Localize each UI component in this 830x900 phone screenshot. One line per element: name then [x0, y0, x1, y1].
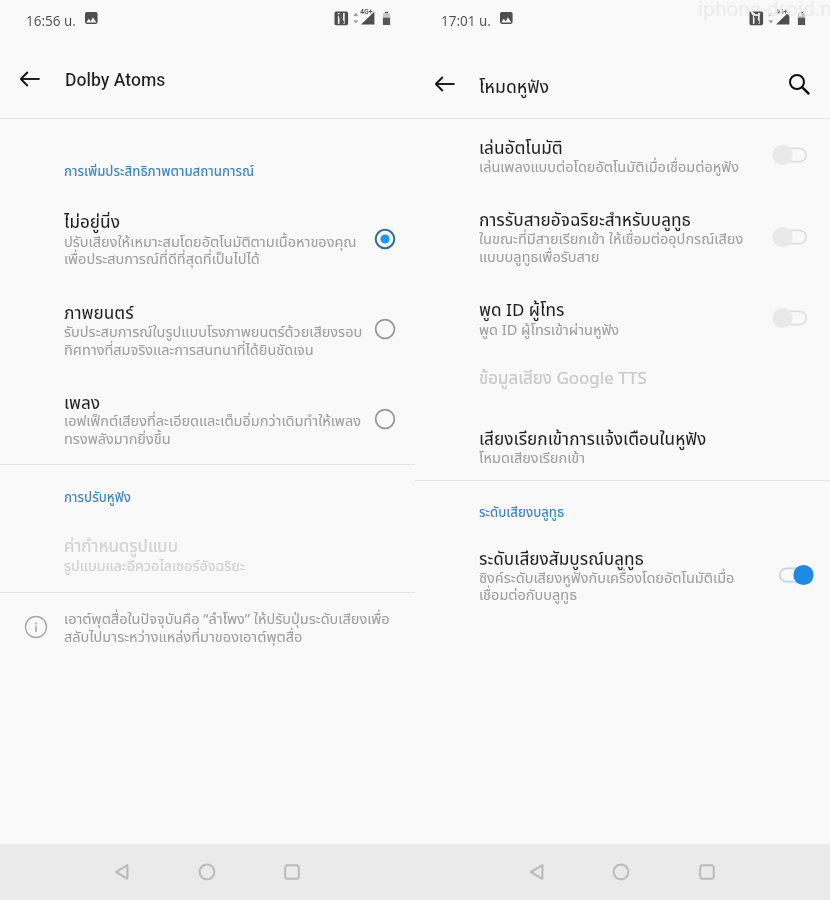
staticText: iphone-droid.net — [698, 0, 830, 22]
staticText: เล่นอัตโนมัติ — [479, 136, 563, 162]
button[interactable]: ระดับเสียงสัมบูรณ์บลูทูธ — [415, 536, 830, 620]
staticText: ระดับเสียงสัมบูรณ์บลูทูธ — [479, 547, 644, 573]
staticText: ค่ากำหนดรูปแบบ — [64, 534, 178, 560]
staticText: 4G+ — [775, 8, 788, 16]
button[interactable]: Toggle setting — [767, 215, 819, 259]
staticText: เล่นเพลงแบบต่อโดยอัตโนมัติเมื่อเชื่อมต่อ… — [479, 157, 739, 179]
button[interactable]: ภาพยนตร์ — [0, 286, 415, 376]
button[interactable]: Back — [514, 848, 562, 896]
button[interactable]: Select option — [363, 217, 407, 261]
staticText: ซิงค์ระดับเสียงหูฟังกับเครื่องโดยอัตโนมั… — [479, 568, 735, 590]
staticText: ข้อมูลเสียง Google TTS — [479, 366, 647, 392]
staticText: ระดับเสียงบลูทูธ — [479, 503, 565, 523]
button[interactable]: Navigate up — [8, 57, 52, 101]
staticText: พูด ID ผู้โทรเข้าผ่านหูฟัง — [479, 320, 620, 342]
button[interactable]: Recent apps — [268, 848, 316, 896]
staticText: แบบบลูทูธเพื่อรับสาย — [479, 247, 600, 269]
button[interactable]: Toggle setting — [767, 553, 819, 597]
button[interactable]: ข้อมูลเสียง Google TTS — [415, 360, 830, 406]
staticText: การปรับหูฟัง — [64, 488, 131, 508]
button[interactable]: Home — [183, 848, 231, 896]
button[interactable]: ไม่อยู่นิ่ง — [0, 195, 415, 285]
staticText: พูด ID ผู้โทร — [479, 298, 565, 324]
staticText: ทรงพลังมากยิ่งขึ้น — [64, 429, 171, 451]
staticText: ไม่อยู่นิ่ง — [64, 210, 120, 236]
staticText: Dolby Atoms — [65, 70, 166, 91]
button[interactable]: Toggle setting — [767, 133, 819, 177]
staticText: 17:01 น. — [441, 12, 491, 32]
button[interactable]: Select option — [363, 307, 407, 351]
button[interactable]: เสียงเรียกเข้าการแจ้งเตือนในหูฟัง — [415, 414, 830, 480]
staticText: ปรับเสียงให้เหมาะสมโดยอัตโนมัติตามเนื้อห… — [64, 232, 357, 254]
staticText: เพื่อประสบการณ์ที่ดีที่สุดที่เป็นไปได้ — [64, 249, 260, 271]
staticText: โหมดเสียงเรียกเข้า — [479, 448, 586, 470]
staticText: รับประสบการณ์ในรูปแบบโรงภาพยนตร์ด้วยเสีย… — [64, 322, 363, 344]
staticText: รูปแบบและอีควอไลเซอร์อัจฉริยะ — [64, 556, 245, 578]
button[interactable]: Search — [776, 62, 820, 106]
staticText: เชื่อมต่อกับบลูทูธ — [479, 585, 578, 607]
staticText: 4G+ — [360, 8, 373, 16]
button[interactable]: เพลง — [0, 376, 415, 464]
staticText: 16:56 น. — [26, 12, 76, 32]
button[interactable]: Back — [99, 848, 147, 896]
staticText: การเพิ่มประสิทธิภาพตามสถานการณ์ — [64, 162, 255, 182]
staticText: ภาพยนตร์ — [64, 301, 134, 327]
staticText: การรับสายอัจฉริยะสำหรับบลูทูธ — [479, 208, 691, 234]
button[interactable]: ค่ากำหนดรูปแบบ — [0, 520, 415, 592]
button[interactable]: Select option — [363, 397, 407, 441]
button[interactable]: Navigate up — [423, 62, 467, 106]
staticText: โหมดหูฟัง — [479, 74, 549, 100]
staticText: ในขณะที่มีสายเรียกเข้า ให้เชื่อมต่ออุปกร… — [479, 229, 744, 251]
staticText: เพลง — [64, 391, 101, 417]
staticText: ทิศทางที่สมจริงและการสนทนาที่ได้ยินชัดเจ… — [64, 340, 314, 362]
button[interactable]: การรับสายอัจฉริยะสำหรับบลูทูธ — [415, 195, 830, 280]
staticText: สลับไปมาระหว่างแหล่งที่มาของเอาต์พุตสื่อ — [64, 627, 303, 649]
button[interactable]: เล่นอัตโนมัติ — [415, 125, 830, 191]
staticText: เอาต์พุตสื่อในปัจจุบันคือ “ลำโพง” ให้ปรั… — [64, 609, 390, 631]
button[interactable]: Recent apps — [683, 848, 731, 896]
button[interactable]: พูด ID ผู้โทร — [415, 288, 830, 352]
staticText: เอฟเฟ็กต์เสียงที่ละเอียดและเต็มอิ่มกว่าเ… — [64, 411, 362, 433]
staticText: เสียงเรียกเข้าการแจ้งเตือนในหูฟัง — [479, 427, 707, 453]
button[interactable]: Home — [597, 848, 645, 896]
button[interactable]: Toggle setting — [767, 296, 819, 340]
